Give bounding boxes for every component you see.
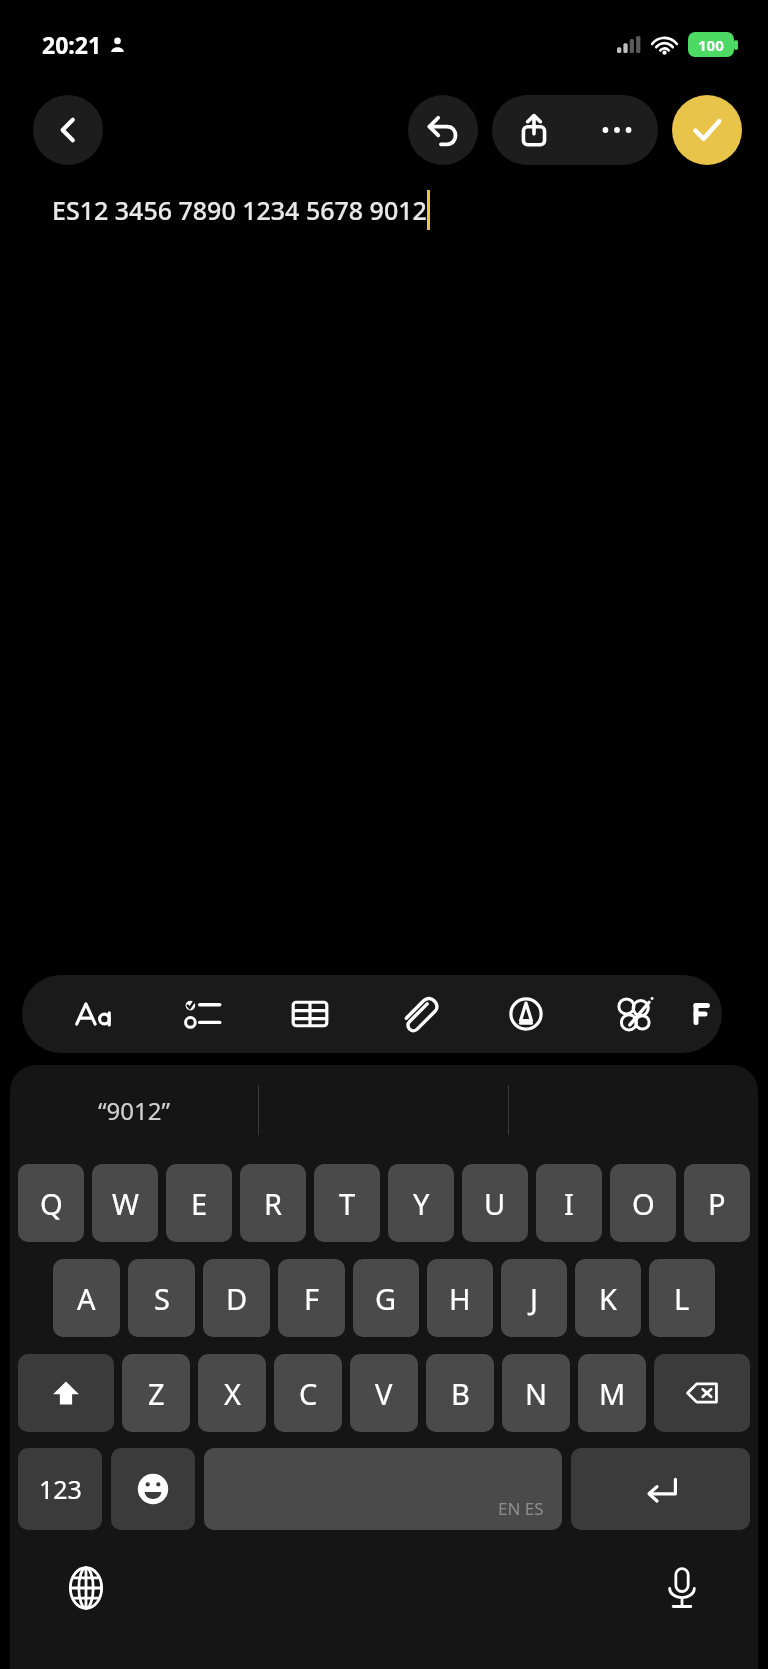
- button[interactable]: I: [536, 1164, 602, 1242]
- button[interactable]: J: [501, 1259, 567, 1337]
- button[interactable]: W: [92, 1164, 158, 1242]
- staticText: N: [525, 1374, 548, 1413]
- staticText: ES12 3456 7890 1234 5678 9012: [52, 193, 427, 227]
- button[interactable]: “9012”: [10, 1065, 258, 1155]
- staticText: P: [708, 1184, 726, 1223]
- staticText: Q: [40, 1184, 63, 1223]
- button[interactable]: Back: [33, 95, 103, 165]
- staticText: 100: [698, 35, 724, 55]
- staticText: Y: [413, 1184, 430, 1223]
- button[interactable]: Y: [388, 1164, 454, 1242]
- staticText: E: [191, 1184, 208, 1223]
- staticText: O: [632, 1184, 655, 1223]
- button[interactable]: Backspace: [654, 1354, 750, 1432]
- staticText: T: [339, 1184, 356, 1223]
- staticText: G: [375, 1279, 397, 1318]
- button[interactable]: Text format: [42, 975, 149, 1053]
- staticText: S: [154, 1279, 170, 1318]
- button[interactable]: Emoji: [111, 1448, 195, 1530]
- staticText: L: [674, 1279, 690, 1318]
- button[interactable]: B: [426, 1354, 494, 1432]
- button[interactable]: K: [575, 1259, 641, 1337]
- button[interactable]: Undo: [408, 95, 478, 165]
- button[interactable]: O: [610, 1164, 676, 1242]
- button[interactable]: Z: [122, 1354, 190, 1432]
- staticText: 20:21: [42, 29, 102, 60]
- staticText: R: [264, 1184, 283, 1223]
- staticText: U: [484, 1184, 506, 1223]
- staticText: Z: [148, 1374, 165, 1413]
- button[interactable]: H: [427, 1259, 493, 1337]
- staticText: “9012”: [98, 1094, 171, 1127]
- button[interactable]: Checklist: [149, 975, 256, 1053]
- staticText: C: [299, 1374, 318, 1413]
- button[interactable]: Return: [571, 1448, 750, 1530]
- button[interactable]: Q: [18, 1164, 84, 1242]
- staticText: V: [375, 1374, 393, 1413]
- button[interactable]: More options: [575, 95, 658, 165]
- staticText: W: [112, 1184, 139, 1223]
- staticText: I: [564, 1184, 574, 1223]
- button[interactable]: R: [240, 1164, 306, 1242]
- button[interactable]: C: [274, 1354, 342, 1432]
- button[interactable]: 123: [18, 1448, 102, 1530]
- button[interactable]: X: [198, 1354, 266, 1432]
- button[interactable]: Share: [492, 95, 575, 165]
- staticText: 123: [39, 1472, 82, 1506]
- button[interactable]: Magic: [580, 975, 688, 1053]
- button[interactable]: V: [350, 1354, 418, 1432]
- button[interactable]: Space: [204, 1448, 562, 1530]
- button[interactable]: N: [502, 1354, 570, 1432]
- staticText: D: [226, 1279, 248, 1318]
- button[interactable]: Voice input: [654, 1560, 710, 1616]
- button[interactable]: P: [684, 1164, 750, 1242]
- button[interactable]: L: [649, 1259, 715, 1337]
- button[interactable]: Markup: [472, 975, 580, 1053]
- button[interactable]: F: [278, 1259, 345, 1337]
- button[interactable]: M: [578, 1354, 646, 1432]
- button[interactable]: S: [128, 1259, 195, 1337]
- button[interactable]: Attach: [364, 975, 472, 1053]
- staticText: J: [530, 1279, 538, 1318]
- staticText: H: [449, 1279, 471, 1318]
- staticText: X: [224, 1374, 241, 1413]
- button[interactable]: E: [166, 1164, 232, 1242]
- button[interactable]: G: [353, 1259, 419, 1337]
- staticText: A: [77, 1279, 96, 1318]
- staticText: M: [599, 1374, 626, 1413]
- button[interactable]: D: [203, 1259, 270, 1337]
- button[interactable]: Change language: [58, 1560, 114, 1616]
- staticText: B: [451, 1374, 470, 1413]
- button[interactable]: T: [314, 1164, 380, 1242]
- staticText: F: [304, 1279, 320, 1318]
- button[interactable]: Done: [672, 95, 742, 165]
- staticText: K: [599, 1279, 617, 1318]
- button[interactable]: U: [462, 1164, 528, 1242]
- button[interactable]: A: [53, 1259, 120, 1337]
- button[interactable]: Table: [256, 975, 364, 1053]
- button[interactable]: Shift: [18, 1354, 114, 1432]
- staticText: EN ES: [498, 1497, 544, 1520]
